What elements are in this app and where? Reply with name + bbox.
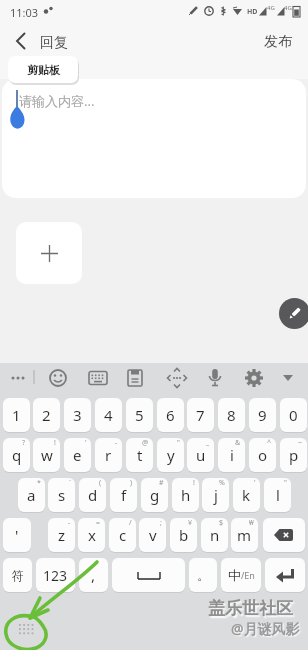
staticText: 11:03 xyxy=(10,5,39,20)
button[interactable] xyxy=(4,363,32,393)
staticText: ^ xyxy=(267,438,272,448)
staticText: l xyxy=(276,485,280,505)
staticText: - xyxy=(115,438,118,448)
button[interactable]: i xyxy=(218,438,245,472)
staticText: y xyxy=(167,445,175,465)
staticText: ` xyxy=(69,478,71,488)
button[interactable] xyxy=(8,28,34,54)
staticText: ' xyxy=(15,525,19,545)
button[interactable]: 7 xyxy=(187,398,214,432)
button[interactable]: w xyxy=(33,438,60,472)
button[interactable]: g xyxy=(141,478,168,512)
button[interactable]: c xyxy=(109,518,136,552)
staticText: ' xyxy=(254,478,256,488)
button[interactable]: 中 xyxy=(221,558,261,592)
button[interactable]: n xyxy=(201,518,228,552)
button[interactable]: k xyxy=(233,478,260,512)
staticText: x xyxy=(88,525,96,545)
button[interactable]: 1 xyxy=(3,398,30,432)
button[interactable]: 123 xyxy=(36,558,75,592)
button[interactable]: b xyxy=(170,518,197,552)
staticText: b xyxy=(179,525,189,545)
staticText: % xyxy=(219,478,225,488)
button[interactable]: 9 xyxy=(249,398,276,432)
staticText: u xyxy=(196,445,206,465)
staticText: ! xyxy=(193,478,195,488)
button[interactable]: l xyxy=(264,478,291,512)
staticText: ! xyxy=(54,438,56,448)
button[interactable]: r xyxy=(95,438,122,472)
button[interactable] xyxy=(112,558,185,592)
button[interactable]: a xyxy=(18,478,45,512)
button[interactable] xyxy=(121,363,149,393)
staticText: _ xyxy=(206,438,210,448)
button[interactable] xyxy=(240,363,268,393)
button[interactable]: d xyxy=(79,478,106,512)
button[interactable]: e xyxy=(64,438,91,472)
staticText: 。 xyxy=(197,567,210,583)
button[interactable] xyxy=(16,222,82,284)
button[interactable]: v xyxy=(139,518,166,552)
button[interactable] xyxy=(274,363,302,393)
staticText: v xyxy=(149,525,157,545)
staticText: ? xyxy=(22,438,26,448)
staticText: , xyxy=(91,565,96,585)
button[interactable] xyxy=(265,558,305,592)
button[interactable] xyxy=(44,363,72,393)
staticText: 9 xyxy=(258,405,267,425)
staticText: g xyxy=(150,485,160,505)
staticText: 1 xyxy=(12,405,21,425)
staticText: 符 xyxy=(12,568,24,583)
button[interactable]: t xyxy=(126,438,153,472)
button[interactable]: 2 xyxy=(33,398,60,432)
staticText: a xyxy=(27,485,36,505)
staticText: 2 xyxy=(42,405,51,425)
staticText: c xyxy=(119,525,127,545)
button[interactable]: 0 xyxy=(280,398,307,432)
button[interactable] xyxy=(279,298,308,329)
button[interactable]: 。 xyxy=(189,558,217,592)
button[interactable]: o xyxy=(249,438,276,472)
button[interactable] xyxy=(84,363,112,393)
button[interactable] xyxy=(201,363,229,393)
staticText: ¥ xyxy=(188,518,193,528)
button[interactable]: f xyxy=(110,478,137,512)
button[interactable] xyxy=(2,79,306,198)
staticText: 请输入内容... xyxy=(19,92,95,110)
staticText: 剪贴板 xyxy=(27,63,60,77)
button[interactable]: 5 xyxy=(126,398,153,432)
button[interactable]: u xyxy=(187,438,214,472)
staticText: 4 xyxy=(104,405,113,425)
button[interactable]: 8 xyxy=(218,398,245,432)
button[interactable]: 4 xyxy=(95,398,122,432)
staticText: q xyxy=(12,445,22,465)
button[interactable]: z xyxy=(48,518,75,552)
staticText: @ xyxy=(142,438,149,448)
staticText: 8 xyxy=(227,405,236,425)
button[interactable] xyxy=(163,363,191,393)
staticText: ~ xyxy=(298,438,303,448)
staticText: - xyxy=(68,518,71,528)
button[interactable]: q xyxy=(3,438,30,472)
button[interactable]: 6 xyxy=(157,398,184,432)
staticText: 7 xyxy=(196,405,205,425)
staticText: ( xyxy=(99,478,102,488)
button[interactable]: j xyxy=(202,478,229,512)
button[interactable]: 符 xyxy=(3,558,32,592)
button[interactable]: 剪贴板 xyxy=(8,56,78,83)
button[interactable]: y xyxy=(157,438,184,472)
button[interactable] xyxy=(263,518,305,552)
button[interactable]: ' xyxy=(3,518,31,552)
button[interactable]: s xyxy=(48,478,75,512)
staticText: e xyxy=(73,445,82,465)
button[interactable]: , xyxy=(79,558,108,592)
button[interactable]: m xyxy=(231,518,258,552)
button[interactable]: 发布 xyxy=(256,28,300,56)
button[interactable]: h xyxy=(172,478,199,512)
staticText: 4G xyxy=(267,4,275,12)
button[interactable]: 3 xyxy=(64,398,91,432)
staticText: ₩ xyxy=(249,518,254,528)
button[interactable]: x xyxy=(78,518,105,552)
staticText: 3 xyxy=(73,405,82,425)
button[interactable]: p xyxy=(280,438,307,472)
